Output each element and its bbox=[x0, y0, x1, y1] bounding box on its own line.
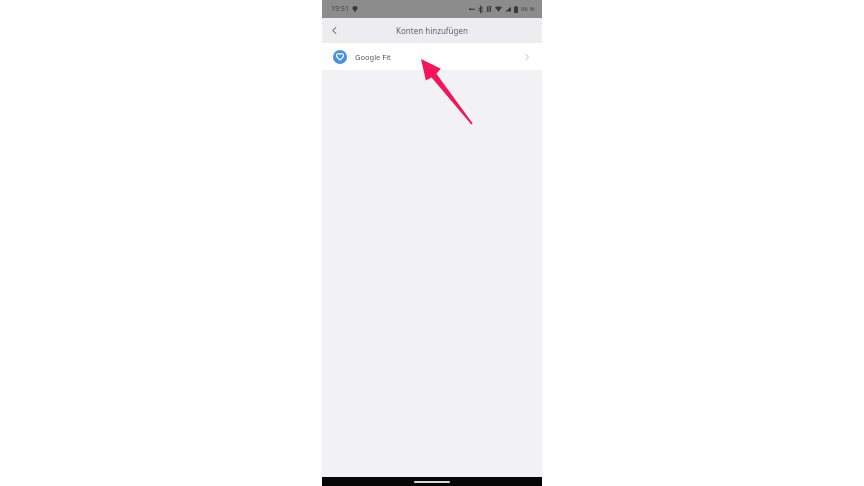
button[interactable]: Google Fit bbox=[322, 43, 542, 70]
button[interactable]: Zurück bbox=[322, 18, 347, 43]
staticText: Konten hinzufügen bbox=[396, 25, 468, 36]
staticText: 19:51 bbox=[331, 4, 349, 14]
staticText: 96 % bbox=[521, 5, 535, 13]
staticText: Google Fit bbox=[355, 52, 523, 62]
